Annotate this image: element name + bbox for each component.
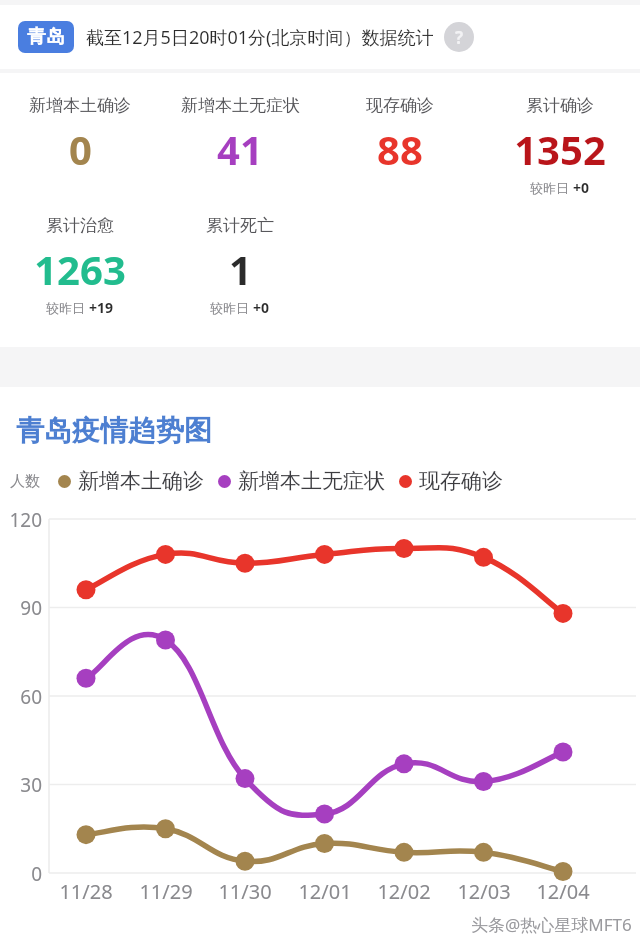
staticText: 11/28 [46,878,126,905]
staticText: 截至12月5日20时01分(北京时间）数据统计 [86,25,434,50]
staticText: 新增本土无症状 [238,468,385,494]
staticText: 1263 [34,242,126,296]
staticText: 现存确诊 [419,468,503,494]
staticText: 青岛疫情趋势图 [16,413,212,448]
staticText: 青岛 [27,25,65,49]
staticText: 0 [69,122,92,176]
staticText: 12/01 [285,878,365,905]
staticText: 1 [229,242,252,296]
button[interactable]: 新增本土无症状 [160,95,320,176]
staticText: 较昨日 [530,180,569,196]
button[interactable]: 新增本土确诊 [58,468,204,494]
staticText: 较昨日 [210,300,249,316]
staticText: 较昨日 [46,300,85,316]
staticText: ? [455,26,464,49]
staticText: 头条@热心星球MFT6 [471,913,632,936]
staticText: 88 [377,122,423,176]
staticText: 12/04 [523,878,603,905]
staticText: 120 [0,507,42,533]
staticText: 0 [0,861,42,887]
button[interactable]: 现存确诊 [399,468,503,494]
button[interactable]: 累计死亡 [160,215,320,317]
button[interactable]: 青岛 [18,5,622,69]
button[interactable]: 现存确诊 [320,95,480,176]
button[interactable]: Help [444,22,474,52]
staticText: 新增本土确诊 [78,468,204,494]
staticText: 累计确诊 [526,95,594,116]
staticText: 1352 [514,122,606,176]
staticText: +0 [253,298,270,317]
staticText: 新增本土确诊 [29,95,131,116]
staticText: 12/03 [444,878,524,905]
staticText: 11/30 [205,878,285,905]
staticText: +0 [573,178,590,197]
button[interactable]: 新增本土确诊 [0,95,160,176]
staticText: 30 [0,772,42,798]
staticText: 11/29 [126,878,206,905]
staticText: 12/02 [364,878,444,905]
staticText: 累计死亡 [206,215,274,236]
button[interactable]: 累计确诊 [480,95,640,197]
button[interactable]: 新增本土无症状 [218,468,385,494]
staticText: 新增本土无症状 [181,95,300,116]
staticText: 累计治愈 [46,215,114,236]
button[interactable]: 累计治愈 [0,215,160,317]
staticText: 人数 [10,472,40,491]
staticText: 90 [0,595,42,621]
staticText: 现存确诊 [366,95,434,116]
staticText: 60 [0,684,42,710]
staticText: 41 [217,122,263,176]
staticText: +19 [89,298,114,317]
